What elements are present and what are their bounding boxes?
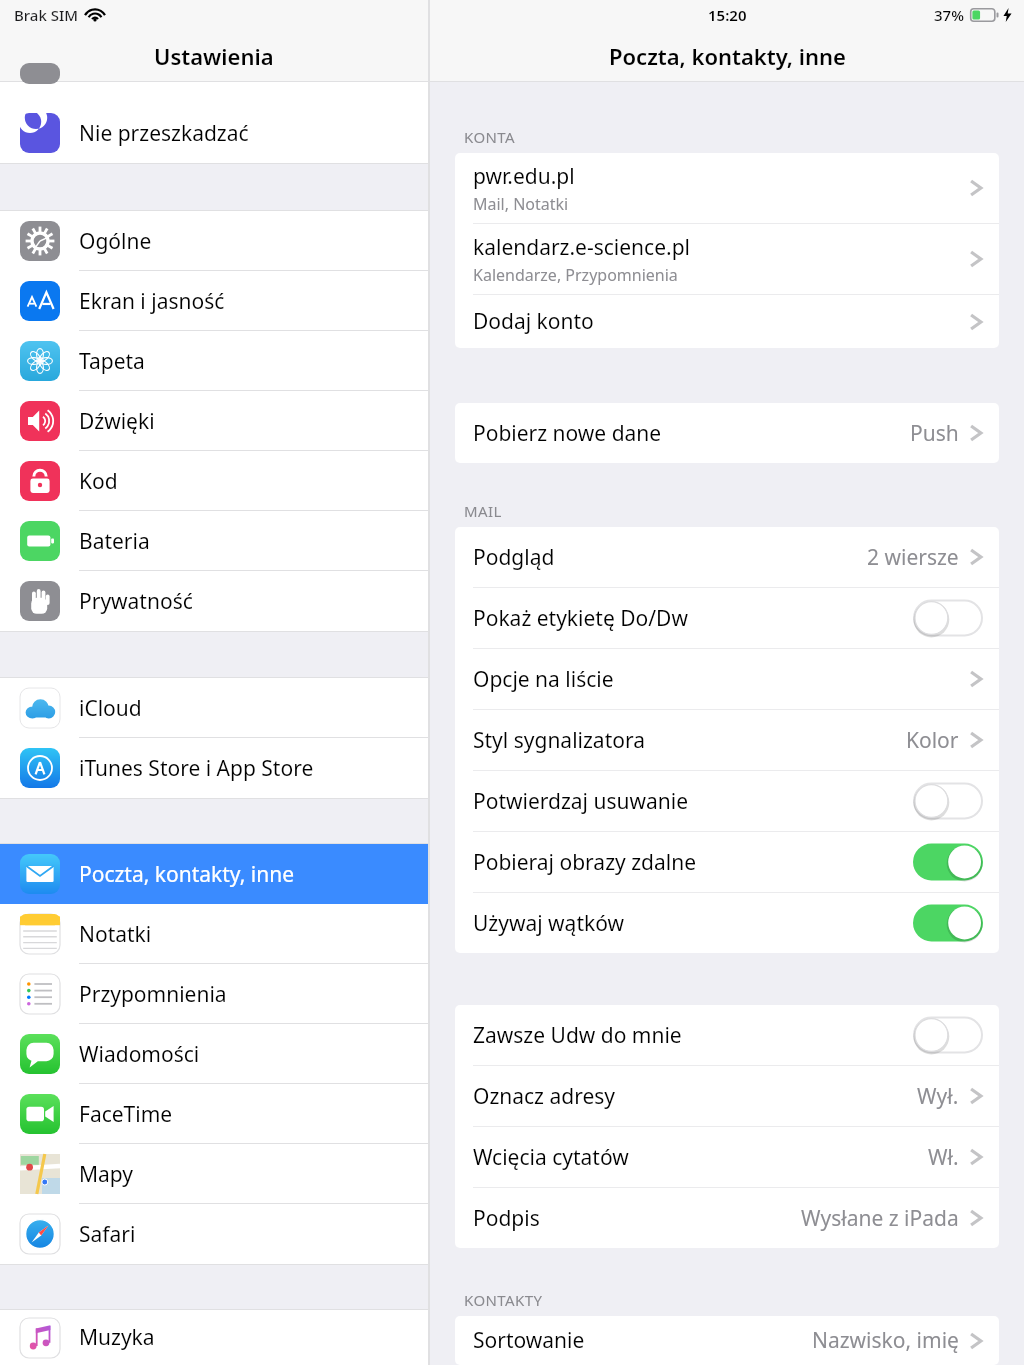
button[interactable]: Pokaż etykietę Do/Dw — [913, 598, 983, 638]
staticText: kalendarz.e-science.pl — [473, 233, 690, 262]
staticText: Ustawienia — [154, 41, 274, 71]
staticText: MAIL — [464, 501, 502, 521]
staticText: Kalendarze, Przypomnienia — [473, 264, 678, 286]
button[interactable]: Notatki — [0, 904, 428, 964]
button[interactable]: Dodaj konto — [455, 295, 999, 348]
button[interactable]: iCloud — [0, 678, 428, 738]
staticText: Kod — [79, 467, 118, 496]
button[interactable]: Zawsze Udw do mnie — [455, 1005, 999, 1065]
button[interactable]: Potwierdzaj usuwanie — [913, 781, 983, 821]
staticText: Poczta, kontakty, inne — [609, 41, 846, 71]
button[interactable]: iTunes Store i App Store — [0, 738, 428, 798]
staticText: Potwierdzaj usuwanie — [473, 787, 688, 816]
staticText: Poczta, kontakty, inne — [79, 860, 295, 889]
button[interactable]: Zawsze Udw do mnie — [913, 1015, 983, 1055]
button[interactable]: Pobieraj obrazy zdalne — [455, 832, 999, 892]
button[interactable]: Safari — [0, 1204, 428, 1264]
staticText: Opcje na liście — [473, 665, 614, 694]
staticText: Wysłane z iPada — [801, 1204, 959, 1233]
button[interactable]: Tapeta — [0, 331, 428, 391]
staticText: Push — [910, 419, 959, 448]
staticText: Dźwięki — [79, 407, 155, 436]
button[interactable]: Nie przeszkadzać — [0, 103, 428, 163]
staticText: Oznacz adresy — [473, 1082, 616, 1111]
staticText: Przypomnienia — [79, 980, 227, 1009]
button[interactable]: Pokaż etykietę Do/Dw — [455, 588, 999, 648]
button[interactable]: Bateria — [0, 511, 428, 571]
staticText: Prywatność — [79, 587, 193, 616]
staticText: FaceTime — [79, 1100, 173, 1129]
staticText: Wył. — [917, 1082, 959, 1111]
staticText: Pobierz nowe dane — [473, 419, 662, 448]
staticText: Pokaż etykietę Do/Dw — [473, 604, 688, 633]
button[interactable]: Podpis — [455, 1188, 999, 1248]
staticText: Pobieraj obrazy zdalne — [473, 848, 696, 877]
button[interactable]: Potwierdzaj usuwanie — [455, 771, 999, 831]
button[interactable]: kalendarz.e-science.pl — [455, 224, 999, 294]
staticText: Wcięcia cytatów — [473, 1143, 629, 1172]
staticText: Bateria — [79, 527, 150, 556]
staticText: iCloud — [79, 694, 142, 723]
staticText: 37% — [934, 5, 964, 25]
staticText: Tapeta — [79, 347, 145, 376]
staticText: Nazwisko, imię — [812, 1326, 959, 1355]
staticText: Ogólne — [79, 227, 152, 256]
staticText: Wiadomości — [79, 1040, 200, 1069]
button[interactable]: pwr.edu.pl — [455, 153, 999, 223]
staticText: iTunes Store i App Store — [79, 754, 314, 783]
staticText: Mail, Notatki — [473, 193, 569, 215]
button[interactable]: Wiadomości — [0, 1024, 428, 1084]
staticText: Notatki — [79, 920, 152, 949]
staticText: 2 wiersze — [867, 543, 959, 572]
staticText: Muzyka — [79, 1323, 155, 1352]
staticText: Wł. — [928, 1143, 959, 1172]
button[interactable]: Prywatność — [0, 571, 428, 631]
button[interactable]: Ekran i jasność — [0, 271, 428, 331]
button[interactable]: Używaj wątków — [455, 893, 999, 953]
button[interactable]: Opcje na liście — [455, 649, 999, 709]
button[interactable]: Mapy — [0, 1144, 428, 1204]
staticText: Sortowanie — [473, 1326, 585, 1355]
button[interactable]: Wcięcia cytatów — [455, 1127, 999, 1187]
button[interactable]: Dźwięki — [0, 391, 428, 451]
staticText: Kolor — [906, 726, 959, 755]
staticText: Podpis — [473, 1204, 540, 1233]
button[interactable]: Muzyka — [0, 1310, 428, 1365]
button[interactable]: Pobierz nowe dane — [455, 403, 999, 463]
staticText: Brak SIM — [14, 5, 79, 25]
button[interactable]: Przypomnienia — [0, 964, 428, 1024]
staticText: Mapy — [79, 1160, 134, 1189]
button[interactable]: Oznacz adresy — [455, 1066, 999, 1126]
staticText: Nie przeszkadzać — [79, 119, 249, 148]
button[interactable]: Styl sygnalizatora — [455, 710, 999, 770]
staticText: KONTAKTY — [464, 1290, 543, 1310]
staticText: Używaj wątków — [473, 909, 624, 938]
staticText: Safari — [79, 1220, 136, 1249]
button[interactable]: Podgląd — [455, 527, 999, 587]
button[interactable]: Poczta, kontakty, inne — [0, 844, 428, 904]
staticText: Podgląd — [473, 543, 555, 572]
staticText: Ekran i jasność — [79, 287, 225, 316]
button[interactable]: Ogólne — [0, 211, 428, 271]
staticText: Dodaj konto — [473, 307, 594, 336]
button[interactable]: Sortowanie — [455, 1316, 999, 1365]
button[interactable]: FaceTime — [0, 1084, 428, 1144]
staticText: KONTA — [464, 127, 515, 147]
staticText: Zawsze Udw do mnie — [473, 1021, 682, 1050]
staticText: Styl sygnalizatora — [473, 726, 645, 755]
staticText: 15:20 — [708, 5, 747, 25]
staticText: pwr.edu.pl — [473, 162, 575, 191]
button[interactable]: Kod — [0, 451, 428, 511]
button[interactable]: Używaj wątków — [913, 903, 983, 943]
button[interactable]: Pobieraj obrazy zdalne — [913, 842, 983, 882]
